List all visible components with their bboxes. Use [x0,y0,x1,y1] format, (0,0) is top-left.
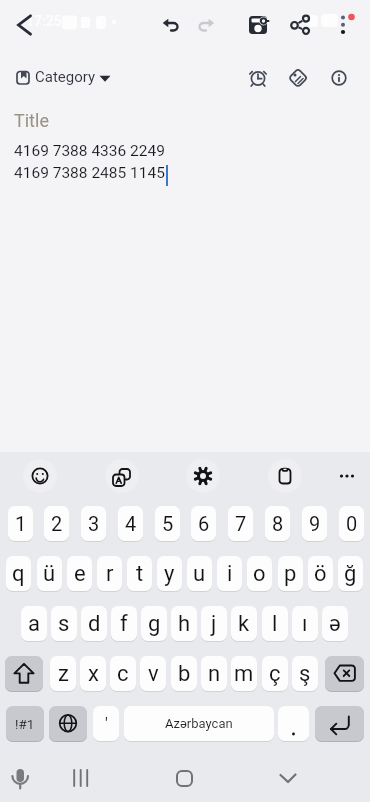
button[interactable]: p [278,556,303,591]
button[interactable]: ' [93,706,119,741]
button[interactable] [63,760,99,796]
staticText: q [12,561,25,587]
staticText: 17:25 [26,13,62,29]
button[interactable]: !#1 [6,706,44,741]
staticText: ' [105,714,108,733]
button[interactable] [325,656,364,691]
button[interactable]: ç [262,656,288,691]
button[interactable] [23,459,57,493]
button[interactable]: ö [308,556,333,591]
staticText: h [178,611,191,637]
button[interactable]: Category [6,58,116,98]
button[interactable]: ı [292,606,318,641]
staticText: o [253,561,266,587]
staticText: b [178,661,191,687]
button[interactable]: f [111,606,137,641]
button[interactable] [280,60,316,96]
button[interactable] [187,5,227,45]
button[interactable] [323,5,363,45]
button[interactable]: 8 [265,506,290,541]
button[interactable]: c [110,656,136,691]
button[interactable]: 2 [44,506,69,541]
staticText: 7 [235,512,247,535]
button[interactable] [186,459,220,493]
button[interactable]: x [80,656,106,691]
button[interactable]: g [141,606,167,641]
button[interactable]: v [140,656,166,691]
button[interactable]: 6 [191,506,216,541]
button[interactable] [2,760,38,796]
staticText: ğ [344,561,357,587]
button[interactable] [315,706,364,741]
button[interactable]: ü [37,556,62,591]
button[interactable]: i [217,556,242,591]
button[interactable] [105,459,139,493]
staticText: a [28,611,40,637]
staticText: g [148,611,161,637]
button[interactable] [268,758,308,798]
button[interactable]: 3 [81,506,106,541]
button[interactable]: ə [322,606,348,641]
button[interactable] [330,459,364,493]
button[interactable] [238,5,278,45]
staticText: ş [299,661,311,687]
button[interactable]: o [247,556,272,591]
button[interactable]: 7 [228,506,253,541]
staticText: j [211,611,217,637]
staticText: u [193,561,206,587]
staticText: z [58,661,69,687]
button[interactable]: j [201,606,227,641]
staticText: 4169 7388 4336 2249 4169 7388 2485 1145 [14,142,165,182]
staticText: v [148,661,159,687]
button[interactable] [5,656,43,691]
button[interactable]: z [50,656,76,691]
button[interactable] [240,60,276,96]
button[interactable]: k [231,606,257,641]
button[interactable]: r [97,556,122,591]
button[interactable] [277,5,317,45]
button[interactable]: 5 [155,506,180,541]
staticText: i [227,561,233,587]
staticText: Category [35,68,96,86]
button[interactable]: d [81,606,107,641]
staticText: 2 [51,512,63,535]
staticText: 3 [88,512,100,535]
staticText: s [58,611,70,637]
staticText: r [106,561,114,587]
button[interactable] [278,706,309,741]
button[interactable]: ğ [338,556,363,591]
button[interactable]: t [127,556,152,591]
button[interactable]: s [51,606,77,641]
staticText: ü [43,561,56,587]
button[interactable] [321,60,357,96]
button[interactable]: b [171,656,197,691]
button[interactable]: 9 [302,506,327,541]
button[interactable] [164,758,204,798]
staticText: m [234,661,254,687]
button[interactable]: 4 [118,506,143,541]
staticText: y [164,561,175,587]
staticText: 8 [272,512,284,535]
button[interactable]: a [21,606,47,641]
staticText: ı [302,611,308,637]
staticText: ç [269,661,281,687]
button[interactable]: n [201,656,227,691]
button[interactable]: l [262,606,288,641]
button[interactable]: e [67,556,92,591]
button[interactable] [150,5,190,45]
button[interactable]: m [231,656,257,691]
button[interactable]: q [6,556,31,591]
button[interactable]: ş [292,656,318,691]
button[interactable]: y [157,556,182,591]
button[interactable]: 0 [339,506,364,541]
staticText: x [88,661,99,687]
staticText: Title [14,110,49,131]
button[interactable]: u [187,556,212,591]
button[interactable] [49,706,87,741]
button[interactable]: h [171,606,197,641]
staticText: !#1 [15,716,35,732]
button[interactable]: 1 [8,506,33,541]
button[interactable]: Azərbaycan [124,706,274,741]
button[interactable] [268,459,302,493]
button[interactable] [3,5,43,45]
